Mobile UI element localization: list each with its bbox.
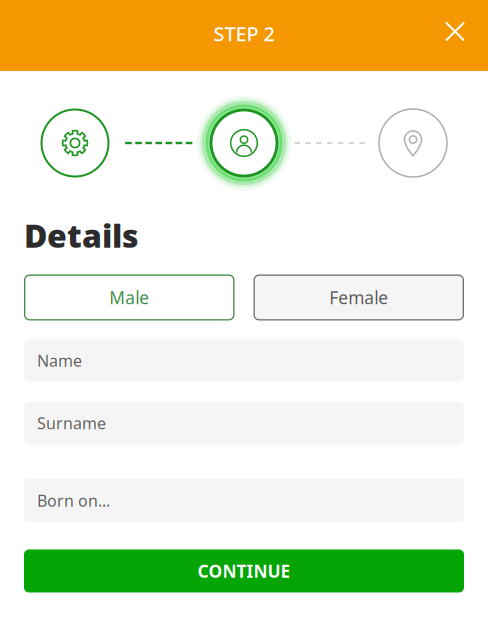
- button[interactable]: Step 2, details, current: [197, 98, 287, 188]
- button[interactable]: Name: [24, 339, 464, 381]
- button[interactable]: Female: [253, 274, 464, 320]
- staticText: Born on...: [37, 490, 110, 511]
- staticText: Male: [109, 286, 149, 309]
- button[interactable]: CONTINUE: [24, 549, 464, 592]
- button[interactable]: Male: [24, 274, 234, 320]
- button[interactable]: Step 3, location: [379, 98, 447, 188]
- staticText: Surname: [37, 412, 106, 434]
- staticText: STEP 2: [213, 20, 274, 47]
- button[interactable]: Surname: [24, 401, 464, 444]
- staticText: Details: [24, 214, 139, 256]
- staticText: CONTINUE: [197, 559, 290, 582]
- staticText: Name: [37, 350, 82, 371]
- button[interactable]: Step 1, preferences, completed: [41, 98, 109, 188]
- button[interactable]: Born on...: [24, 478, 464, 522]
- button[interactable]: Close: [433, 9, 477, 53]
- staticText: Female: [329, 286, 388, 309]
